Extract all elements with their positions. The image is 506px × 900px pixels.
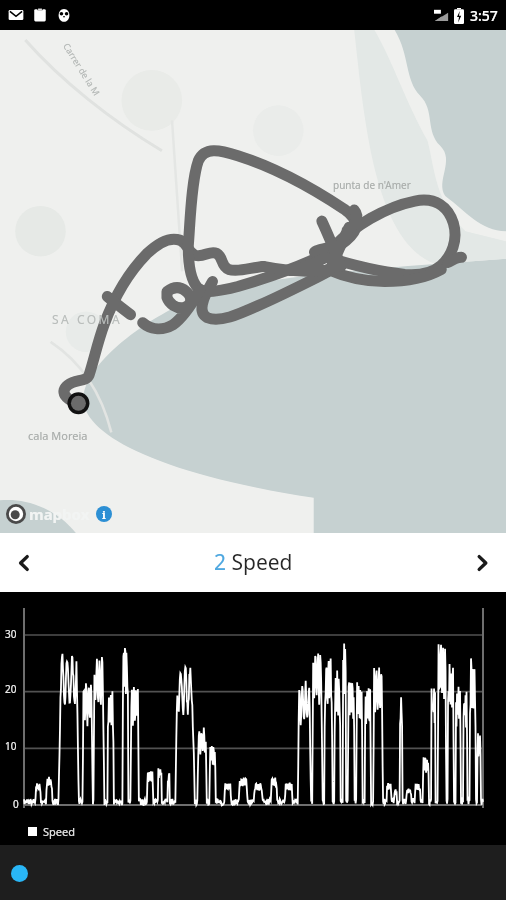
staticText: 3:57: [470, 6, 498, 25]
button[interactable]: Map attribution info: [96, 506, 112, 522]
staticText: Carrer de la M: [61, 40, 103, 98]
staticText: SA COMA: [52, 311, 123, 327]
staticText: 10: [5, 739, 17, 753]
button[interactable]: 2 Speed: [214, 548, 293, 577]
button[interactable]: Next chart: [458, 533, 506, 592]
staticText: 20: [5, 682, 17, 696]
staticText: mapbox: [29, 504, 90, 524]
staticText: 2 Speed: [214, 548, 293, 577]
staticText: punta de n'Amer: [333, 178, 411, 192]
button[interactable]: Chart page indicator: [8, 862, 30, 884]
other: Mapbox: [6, 504, 26, 524]
button[interactable]: Previous chart: [0, 533, 48, 592]
staticText: i: [102, 507, 106, 522]
staticText: 0: [13, 797, 19, 811]
staticText: Speed: [43, 824, 75, 839]
staticText: cala Moreia: [28, 428, 88, 443]
staticText: 30: [5, 627, 17, 641]
